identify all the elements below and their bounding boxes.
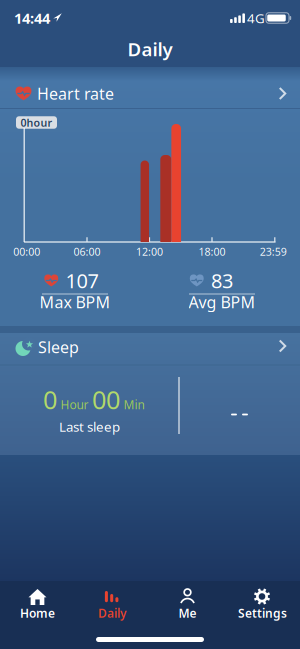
staticText: Me [178,605,196,621]
button[interactable]: Home [0,0,300,649]
staticText: Home [20,605,55,621]
staticText: 14:44 [14,8,50,28]
staticText: Min [123,397,144,413]
button[interactable]: Sleep [0,0,300,649]
staticText: Settings [238,605,287,621]
staticText: Daily [127,37,172,61]
staticText: 83 [211,267,233,294]
staticText: Sleep [38,336,79,358]
staticText: Heart rate [37,83,114,104]
staticText: Max BPM [39,291,110,313]
staticText: 107 [65,267,98,294]
staticText: Daily [98,605,127,621]
button[interactable]: Settings [0,0,300,649]
staticText: 4G [247,9,265,27]
staticText: 00:00 [13,244,40,259]
button[interactable]: Me [0,0,300,649]
staticText: 0hour [20,115,52,130]
button[interactable]: Heart rate [0,0,300,649]
staticText: 18:00 [198,244,225,259]
staticText: 06:00 [73,244,100,259]
staticText: Avg BPM [188,291,255,313]
staticText: Hour [60,397,88,413]
staticText: 0 [43,383,57,416]
staticText: 12:00 [136,244,163,259]
button[interactable]: Daily [0,0,300,649]
staticText: Last sleep [59,418,120,435]
staticText: 00 [92,383,120,416]
staticText: 23:59 [260,244,287,259]
